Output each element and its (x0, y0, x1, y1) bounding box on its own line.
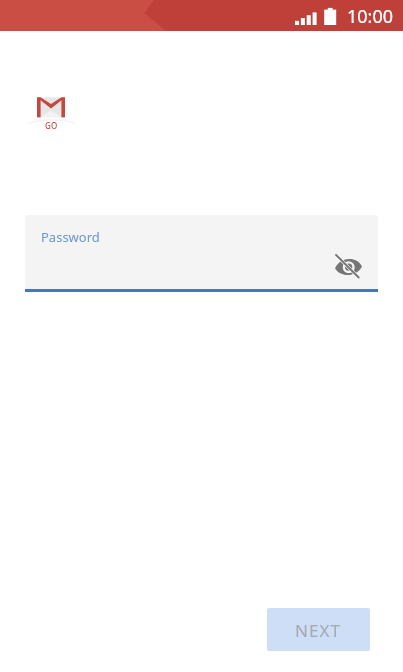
staticText: GO (45, 120, 58, 131)
button[interactable]: NEXT (267, 608, 370, 651)
button[interactable]: Password (25, 215, 378, 289)
staticText: NEXT (295, 619, 341, 642)
staticText: 10:00 (347, 4, 394, 29)
button[interactable]: Show password (326, 247, 371, 284)
staticText: Password (41, 228, 100, 246)
